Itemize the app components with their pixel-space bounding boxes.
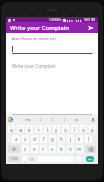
button[interactable]: ?123: [8, 156, 20, 162]
button[interactable]: m: [76, 145, 83, 153]
button[interactable]: v: [49, 145, 56, 153]
button[interactable]: h: [58, 135, 65, 143]
staticText: 6: [56, 126, 58, 129]
button[interactable]: d: [31, 135, 38, 143]
button[interactable]: Key: [85, 145, 96, 153]
button[interactable]: l: [85, 135, 92, 143]
staticText: x: [33, 146, 36, 152]
staticText: f: [43, 136, 45, 142]
button[interactable]: k: [76, 135, 83, 143]
staticText: q: [10, 127, 13, 133]
staticText: e: [28, 127, 31, 133]
staticText: to: [65, 117, 88, 122]
staticText: b: [60, 146, 63, 152]
staticText: 0: [92, 126, 94, 129]
staticText: I: [41, 117, 64, 122]
button[interactable]: 7: [62, 125, 69, 133]
button[interactable]: a: [12, 135, 20, 143]
staticText: o: [82, 127, 85, 133]
staticText: Area (House no, street etc): [12, 36, 56, 41]
button[interactable]: 5: [44, 125, 51, 133]
button[interactable]: 9: [80, 125, 87, 133]
staticText: 5: [47, 126, 49, 129]
staticText: 7: [65, 126, 67, 129]
staticText: k: [78, 136, 81, 142]
staticText: 3: [29, 126, 31, 129]
button[interactable]: Voice input: [90, 117, 96, 123]
staticText: d: [33, 136, 36, 142]
staticText: a: [15, 136, 18, 142]
staticText: Write your Complain: [10, 24, 70, 32]
staticText: y: [55, 127, 58, 133]
staticText: .: [78, 157, 80, 162]
button[interactable]: j: [67, 135, 74, 143]
staticText: n: [69, 146, 72, 152]
button[interactable]: 8: [71, 125, 78, 133]
button[interactable]: x: [31, 145, 38, 153]
staticText: l: [88, 136, 90, 142]
staticText: t: [47, 127, 49, 133]
staticText: 2: [20, 126, 22, 129]
button[interactable]: 6: [53, 125, 60, 133]
staticText: p: [91, 127, 94, 133]
staticText: 8: [74, 126, 76, 129]
button[interactable]: z: [22, 145, 29, 153]
button[interactable]: f: [40, 135, 47, 143]
staticText: s: [24, 136, 27, 142]
staticText: j: [70, 136, 72, 142]
staticText: 9: [83, 126, 85, 129]
button[interactable]: ,: [22, 156, 27, 162]
staticText: ?123: [11, 157, 18, 161]
staticText: w: [19, 127, 23, 133]
staticText: c: [42, 146, 45, 152]
button[interactable]: Write your Complain: [12, 63, 92, 69]
button[interactable]: Emoji: [29, 156, 35, 162]
staticText: 1.00KB/s: [49, 18, 62, 22]
button[interactable]: 3: [26, 125, 33, 133]
button[interactable]: Key: [8, 145, 20, 153]
button[interactable]: b: [58, 145, 65, 153]
button[interactable]: Google search: [8, 117, 13, 122]
button[interactable]: 4: [35, 125, 42, 133]
button[interactable]: s: [22, 135, 29, 143]
staticText: the: [16, 117, 40, 122]
staticText: u: [64, 127, 67, 133]
button[interactable]: Send complaint: [86, 23, 95, 32]
staticText: ,: [24, 157, 26, 162]
button[interactable]: .: [76, 156, 81, 162]
staticText: r: [38, 127, 40, 133]
button[interactable]: c: [40, 145, 47, 153]
button[interactable]: n: [67, 145, 74, 153]
button[interactable]: [12, 44, 92, 53]
staticText: g: [51, 136, 54, 142]
staticText: h: [60, 136, 63, 142]
staticText: v: [51, 146, 54, 152]
button[interactable]: 1: [8, 125, 15, 133]
button[interactable]: 0: [89, 125, 96, 133]
staticText: Write your Complain: [12, 63, 56, 69]
staticText: i: [74, 127, 76, 133]
staticText: 9:55 PM: [84, 18, 96, 22]
button[interactable]: Enter: [86, 156, 94, 162]
staticText: 4: [38, 126, 40, 129]
button[interactable]: 2: [17, 125, 24, 133]
button[interactable]: g: [49, 135, 56, 143]
staticText: z: [24, 146, 27, 152]
staticText: 1: [11, 126, 13, 129]
staticText: m: [77, 146, 82, 152]
